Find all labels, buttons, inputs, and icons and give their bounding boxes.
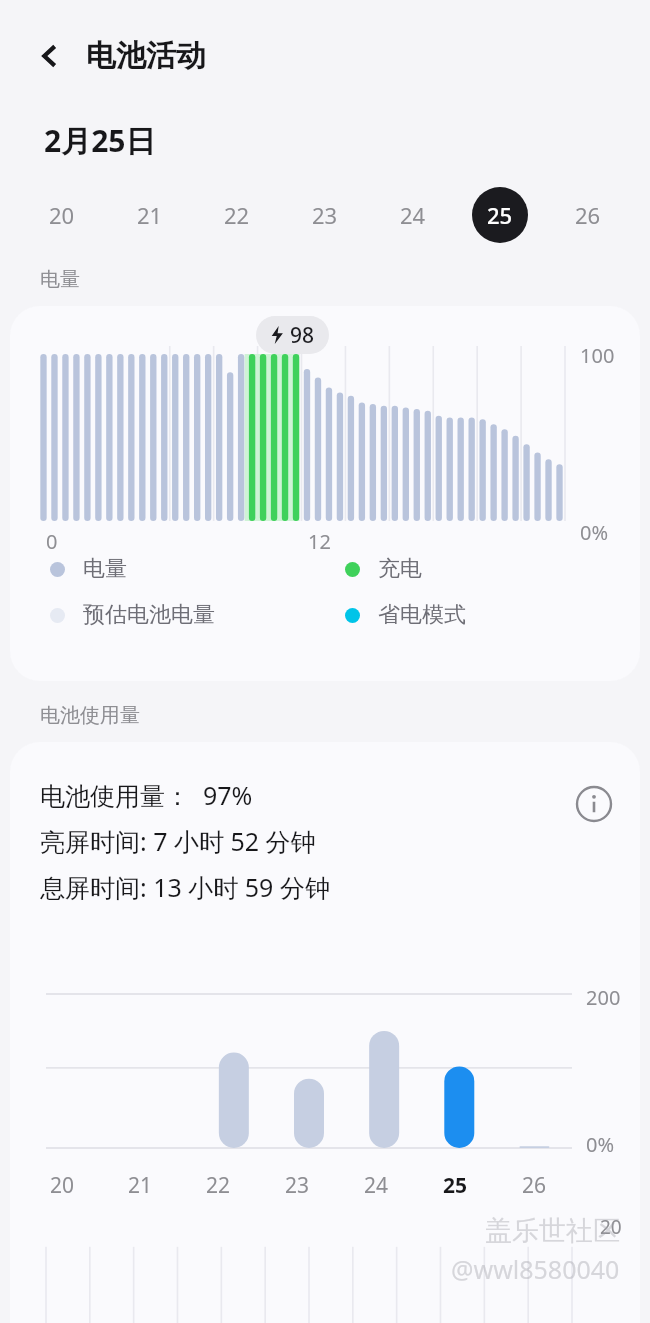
staticText: 盖乐世社区 <box>485 1214 620 1248</box>
staticText: 23 <box>312 200 338 230</box>
staticText: 25 <box>487 200 513 230</box>
staticText: 电池使用量： 97% <box>40 778 253 812</box>
button[interactable]: 22 <box>209 187 265 243</box>
button[interactable]: 21 <box>122 187 178 243</box>
staticText: 0% <box>586 1131 615 1158</box>
staticText: 21 <box>137 200 163 230</box>
staticText: 23 <box>285 1171 310 1200</box>
staticText: 20 <box>49 200 75 230</box>
staticText: 电量 <box>40 267 80 292</box>
staticText: 22 <box>206 1171 231 1200</box>
staticText: 24 <box>400 200 426 230</box>
staticText: 98 <box>290 321 315 349</box>
staticText: 2月25日 <box>44 120 156 161</box>
staticText: 12 <box>308 528 331 555</box>
staticText: 200 <box>586 984 621 1011</box>
button[interactable]: 26 <box>560 187 616 243</box>
button[interactable]: 20 <box>34 187 90 243</box>
staticText: 26 <box>522 1171 547 1200</box>
staticText: 100 <box>580 342 615 369</box>
staticText: @wwl8580040 <box>451 1252 620 1286</box>
staticText: 电量 <box>83 555 127 583</box>
button[interactable]: 25 <box>472 187 528 243</box>
staticText: 电池活动 <box>86 37 206 75</box>
staticText: 亮屏时间: 7 小时 52 分钟 <box>40 824 316 858</box>
button[interactable]: 24 <box>385 187 441 243</box>
staticText: 息屏时间: 13 小时 59 分钟 <box>40 870 330 904</box>
staticText: 24 <box>364 1171 389 1200</box>
staticText: 21 <box>128 1171 153 1200</box>
staticText: 20 <box>600 1214 622 1240</box>
staticText: 充电 <box>378 555 422 583</box>
staticText: 电池使用量 <box>40 703 140 728</box>
staticText: 25 <box>443 1171 468 1200</box>
staticText: 22 <box>224 200 250 230</box>
staticText: 20 <box>50 1171 75 1200</box>
staticText: 预估电池电量 <box>83 601 215 629</box>
button[interactable]: Back <box>26 32 74 80</box>
staticText: 省电模式 <box>378 601 466 629</box>
button[interactable]: Info <box>570 780 618 828</box>
staticText: 26 <box>575 200 601 230</box>
button[interactable]: 100 <box>10 306 640 681</box>
staticText: 0% <box>580 519 609 546</box>
staticText: 0 <box>46 528 58 555</box>
button[interactable]: 23 <box>297 187 353 243</box>
